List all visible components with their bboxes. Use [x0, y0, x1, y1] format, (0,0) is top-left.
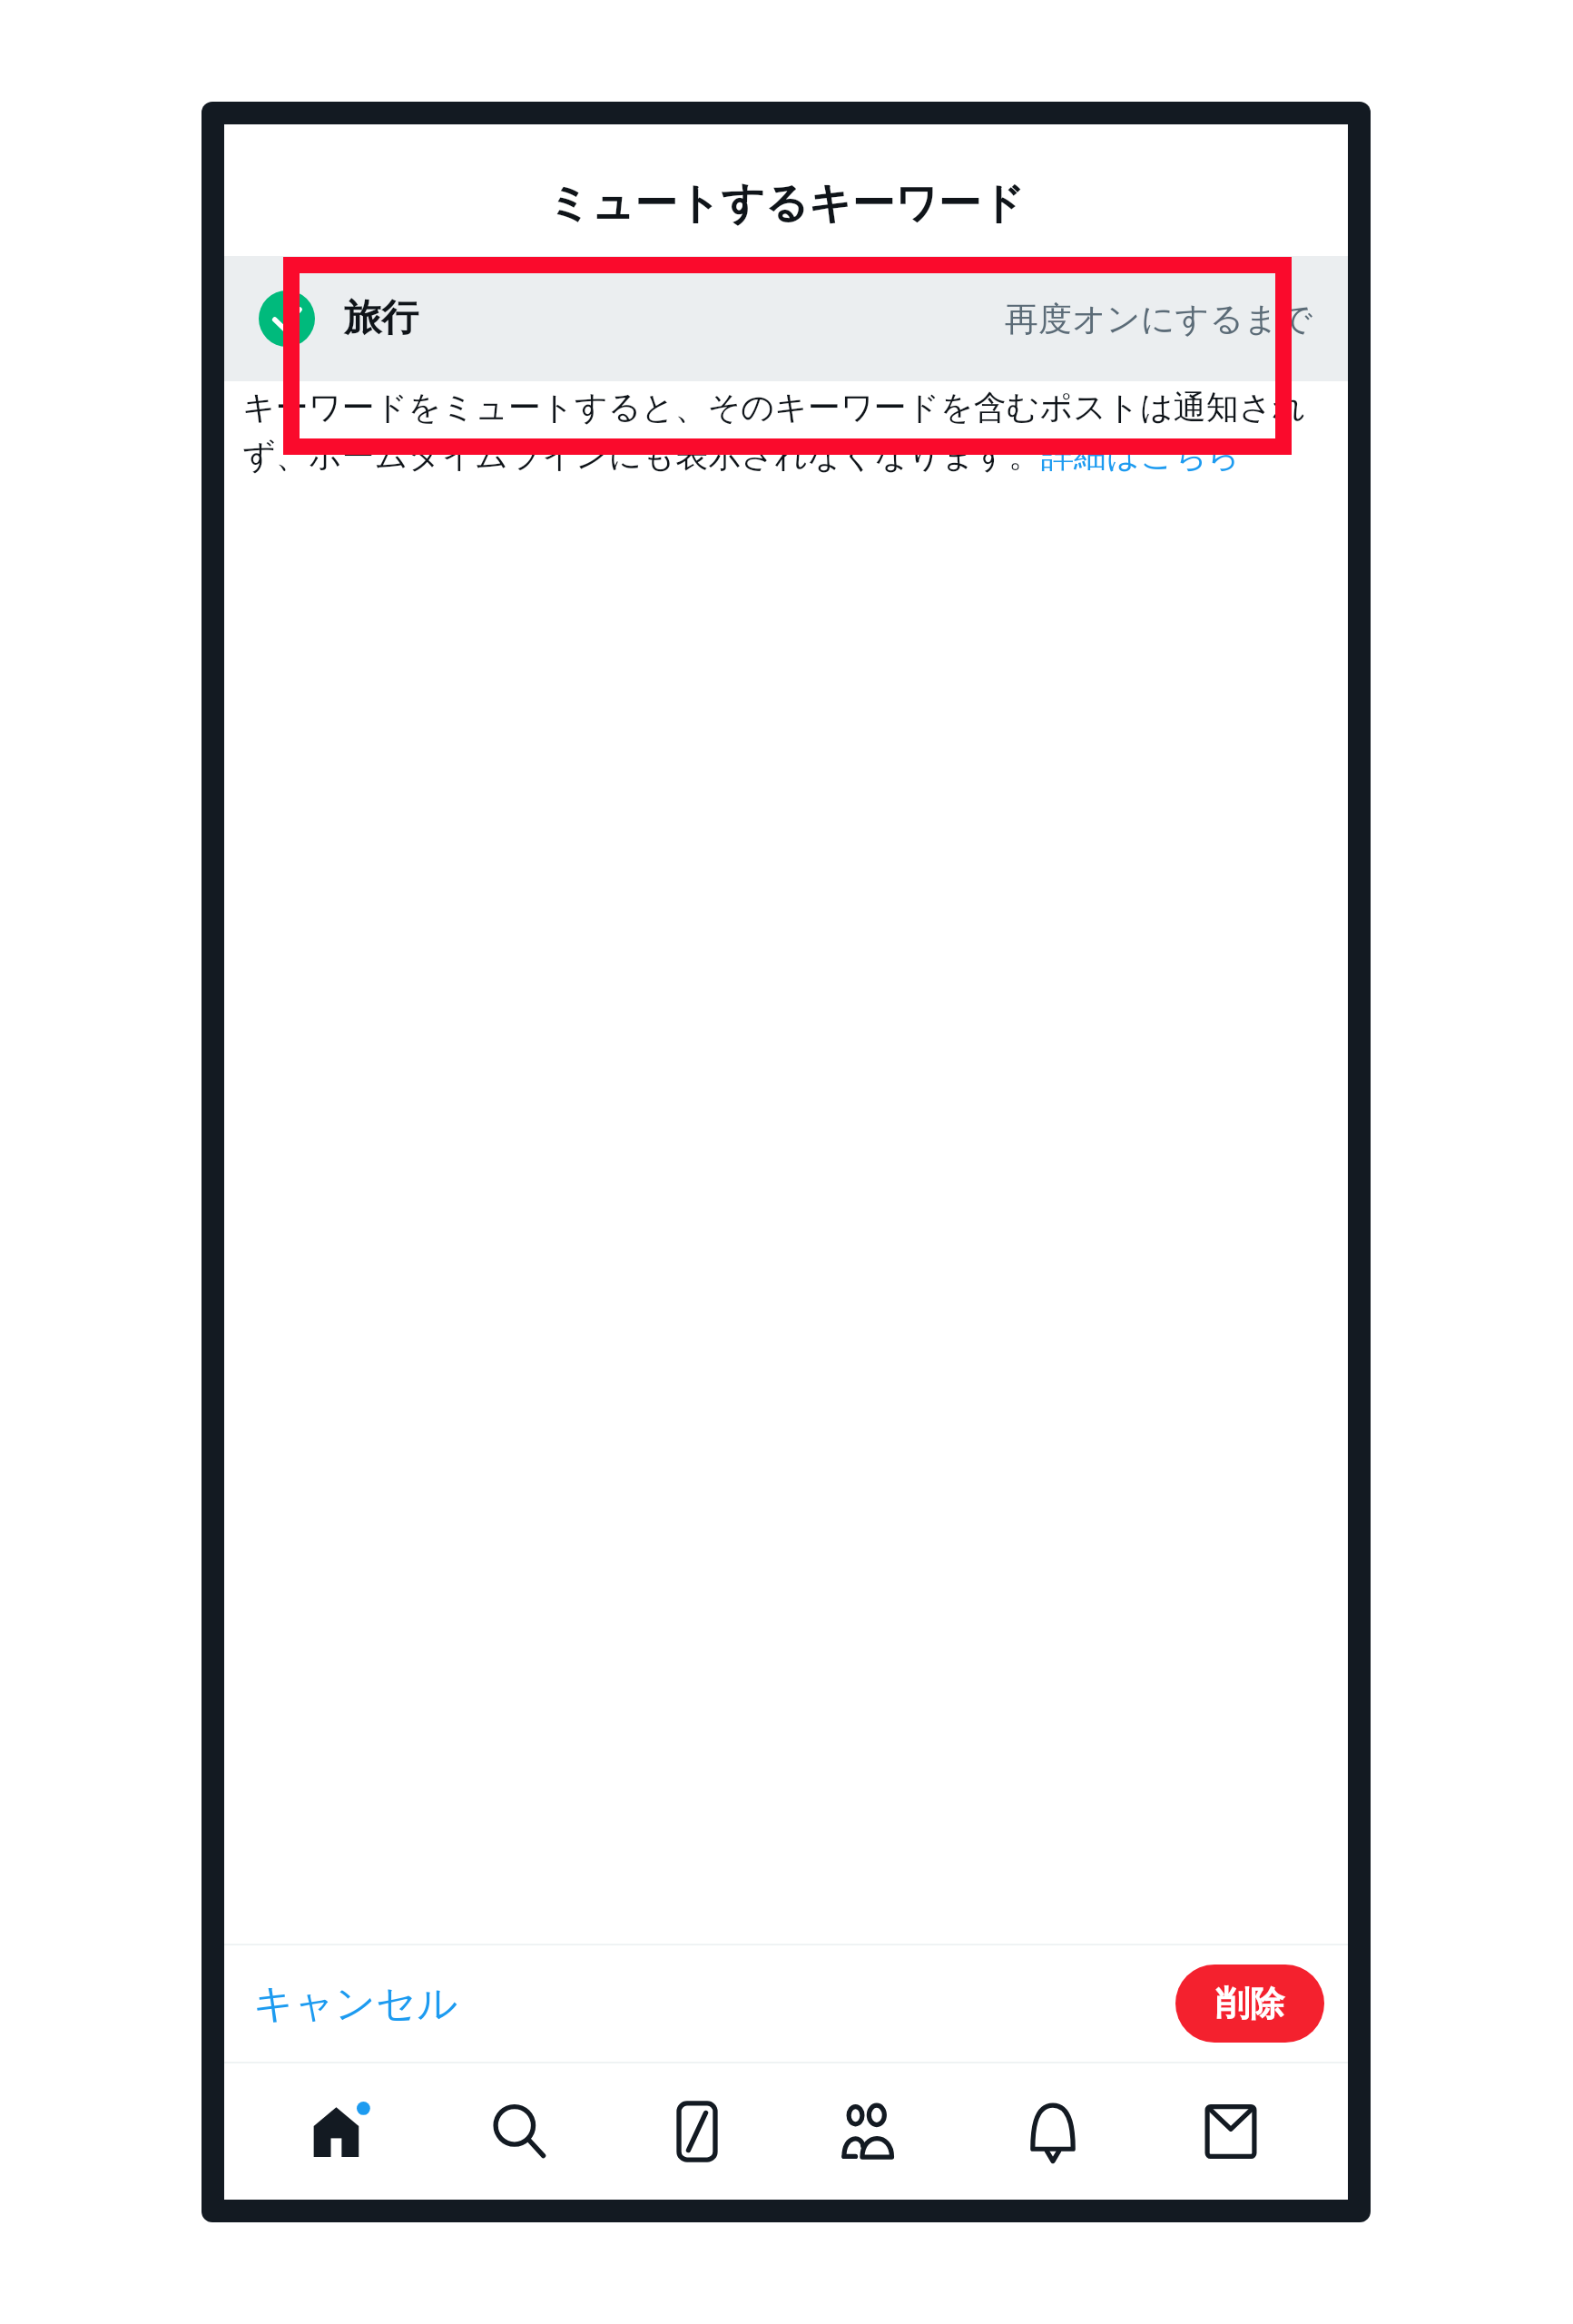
staticText: ミュートするキーワード: [547, 177, 1025, 231]
staticText: 再度オンにするまで: [1005, 298, 1313, 340]
button[interactable]: Home: [273, 2063, 409, 2200]
button[interactable]: キャンセル: [248, 1968, 464, 2040]
button[interactable]: 削除: [1175, 1965, 1324, 2043]
button[interactable]: Notifications: [985, 2063, 1121, 2200]
button[interactable]: Search: [451, 2063, 587, 2200]
button[interactable]: Messages: [1163, 2063, 1299, 2200]
staticText: 旅行: [344, 295, 418, 342]
button[interactable]: Communities: [807, 2063, 943, 2200]
button[interactable]: Grok: [629, 2063, 765, 2200]
staticText: キャンセル: [253, 1979, 458, 2029]
staticText: 削除: [1215, 1982, 1284, 2025]
button[interactable]: 旅行: [224, 256, 1348, 381]
staticText: キーワードをミュートすると、そのキーワードを含むポストは通知されず、ホームタイム…: [242, 387, 1330, 477]
